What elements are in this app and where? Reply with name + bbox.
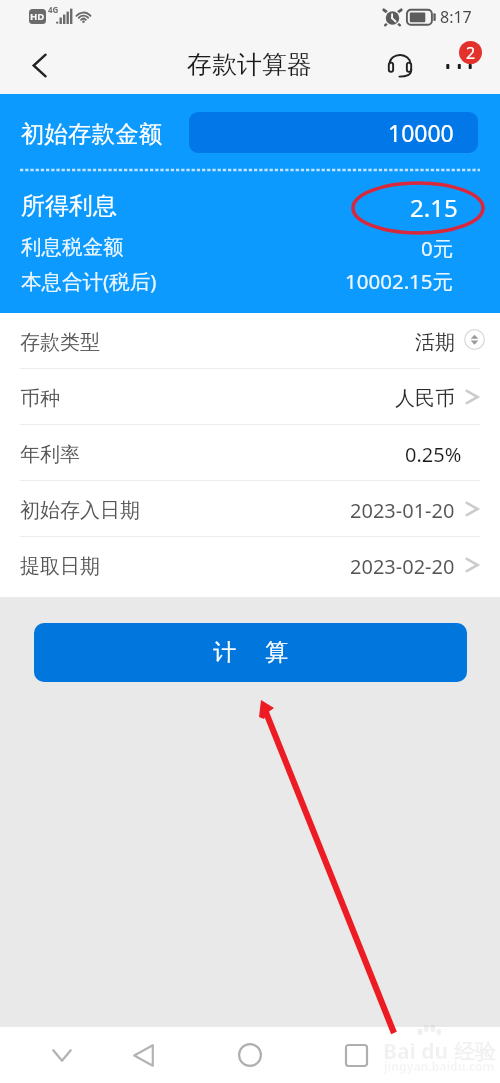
button[interactable]: 提取日期 xyxy=(0,537,500,593)
button[interactable]: More options xyxy=(436,41,482,87)
button[interactable]: Customer service xyxy=(378,42,422,86)
staticText: 存款类型 xyxy=(20,330,100,355)
staticText: 2 xyxy=(466,42,476,64)
staticText: 利息税金额 xyxy=(21,234,124,260)
staticText: 所得利息 xyxy=(21,191,117,221)
button[interactable]: Home xyxy=(228,1033,272,1077)
button[interactable]: 10000 xyxy=(189,112,478,153)
button[interactable]: 存款类型 xyxy=(0,313,500,369)
button[interactable]: Recent apps xyxy=(334,1033,378,1077)
staticText: 4G xyxy=(48,4,59,15)
staticText: 2023-02-20 xyxy=(350,553,455,580)
staticText: 年利率 xyxy=(20,442,80,467)
button[interactable]: 计 xyxy=(34,623,467,682)
button[interactable]: 币种 xyxy=(0,369,500,425)
staticText: 存款计算器 xyxy=(187,49,312,80)
staticText: 2023-01-20 xyxy=(350,497,455,524)
staticText: Bai du 经验 xyxy=(383,1037,496,1066)
staticText: 算 xyxy=(265,638,288,667)
staticText: 10000 xyxy=(388,117,454,148)
staticText: 初始存款金额 xyxy=(21,119,162,149)
staticText: 计 xyxy=(213,638,236,667)
staticText: 0.25% xyxy=(405,441,462,468)
button[interactable]: Back xyxy=(17,43,61,87)
staticText: 活期 xyxy=(415,330,455,355)
staticText: 8:17 xyxy=(440,6,472,28)
staticText: HD xyxy=(30,10,45,23)
staticText: 本息合计(税后) xyxy=(21,267,157,295)
staticText: 初始存入日期 xyxy=(20,498,140,523)
button[interactable]: Hide keyboard xyxy=(40,1033,84,1077)
staticText: 2.15 xyxy=(410,191,458,224)
button[interactable]: 初始存入日期 xyxy=(0,481,500,537)
staticText: 提取日期 xyxy=(20,554,100,579)
staticText: 币种 xyxy=(20,386,60,411)
button[interactable]: 年利率 xyxy=(0,425,500,481)
staticText: 10002.15元 xyxy=(345,267,454,295)
staticText: 人民币 xyxy=(395,386,455,411)
button[interactable]: Back xyxy=(121,1033,165,1077)
staticText: jingyan.baidu.com xyxy=(384,1058,495,1074)
staticText: 0元 xyxy=(421,234,454,262)
